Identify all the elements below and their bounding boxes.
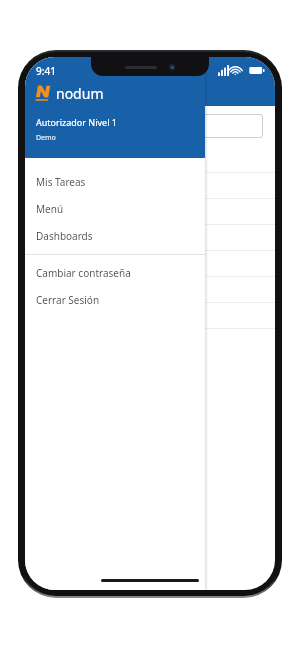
staticText: Demo	[36, 133, 56, 143]
staticText: 9:41	[36, 64, 56, 78]
staticText: Mis dashboards favoritos	[37, 148, 168, 163]
button[interactable]	[25, 225, 275, 250]
staticText: 9:41	[43, 64, 63, 78]
staticText: Menú	[36, 202, 64, 216]
button[interactable]: nodum	[35, 84, 104, 103]
button[interactable]: Dashboards	[25, 222, 205, 249]
staticText: Autorizador Nivel 1	[36, 116, 117, 128]
button[interactable]	[25, 173, 275, 198]
button[interactable]	[25, 199, 275, 224]
button[interactable]: Mis Tareas	[25, 168, 205, 195]
button[interactable]	[25, 277, 275, 302]
staticText: nodum	[56, 84, 104, 103]
button[interactable]	[25, 303, 275, 328]
staticText: Mis Tareas	[36, 175, 86, 189]
button[interactable]	[37, 114, 263, 138]
staticText: Dashboards	[36, 229, 93, 243]
button[interactable]: Cerrar Sesión	[25, 286, 205, 313]
button[interactable]: Menú	[25, 195, 205, 222]
button[interactable]: Cambiar contraseña	[25, 259, 205, 286]
staticText: Cerrar Sesión	[36, 293, 100, 307]
staticText: Dashboards	[37, 85, 105, 101]
button[interactable]	[25, 251, 275, 276]
staticText: Cambiar contraseña	[36, 266, 131, 280]
